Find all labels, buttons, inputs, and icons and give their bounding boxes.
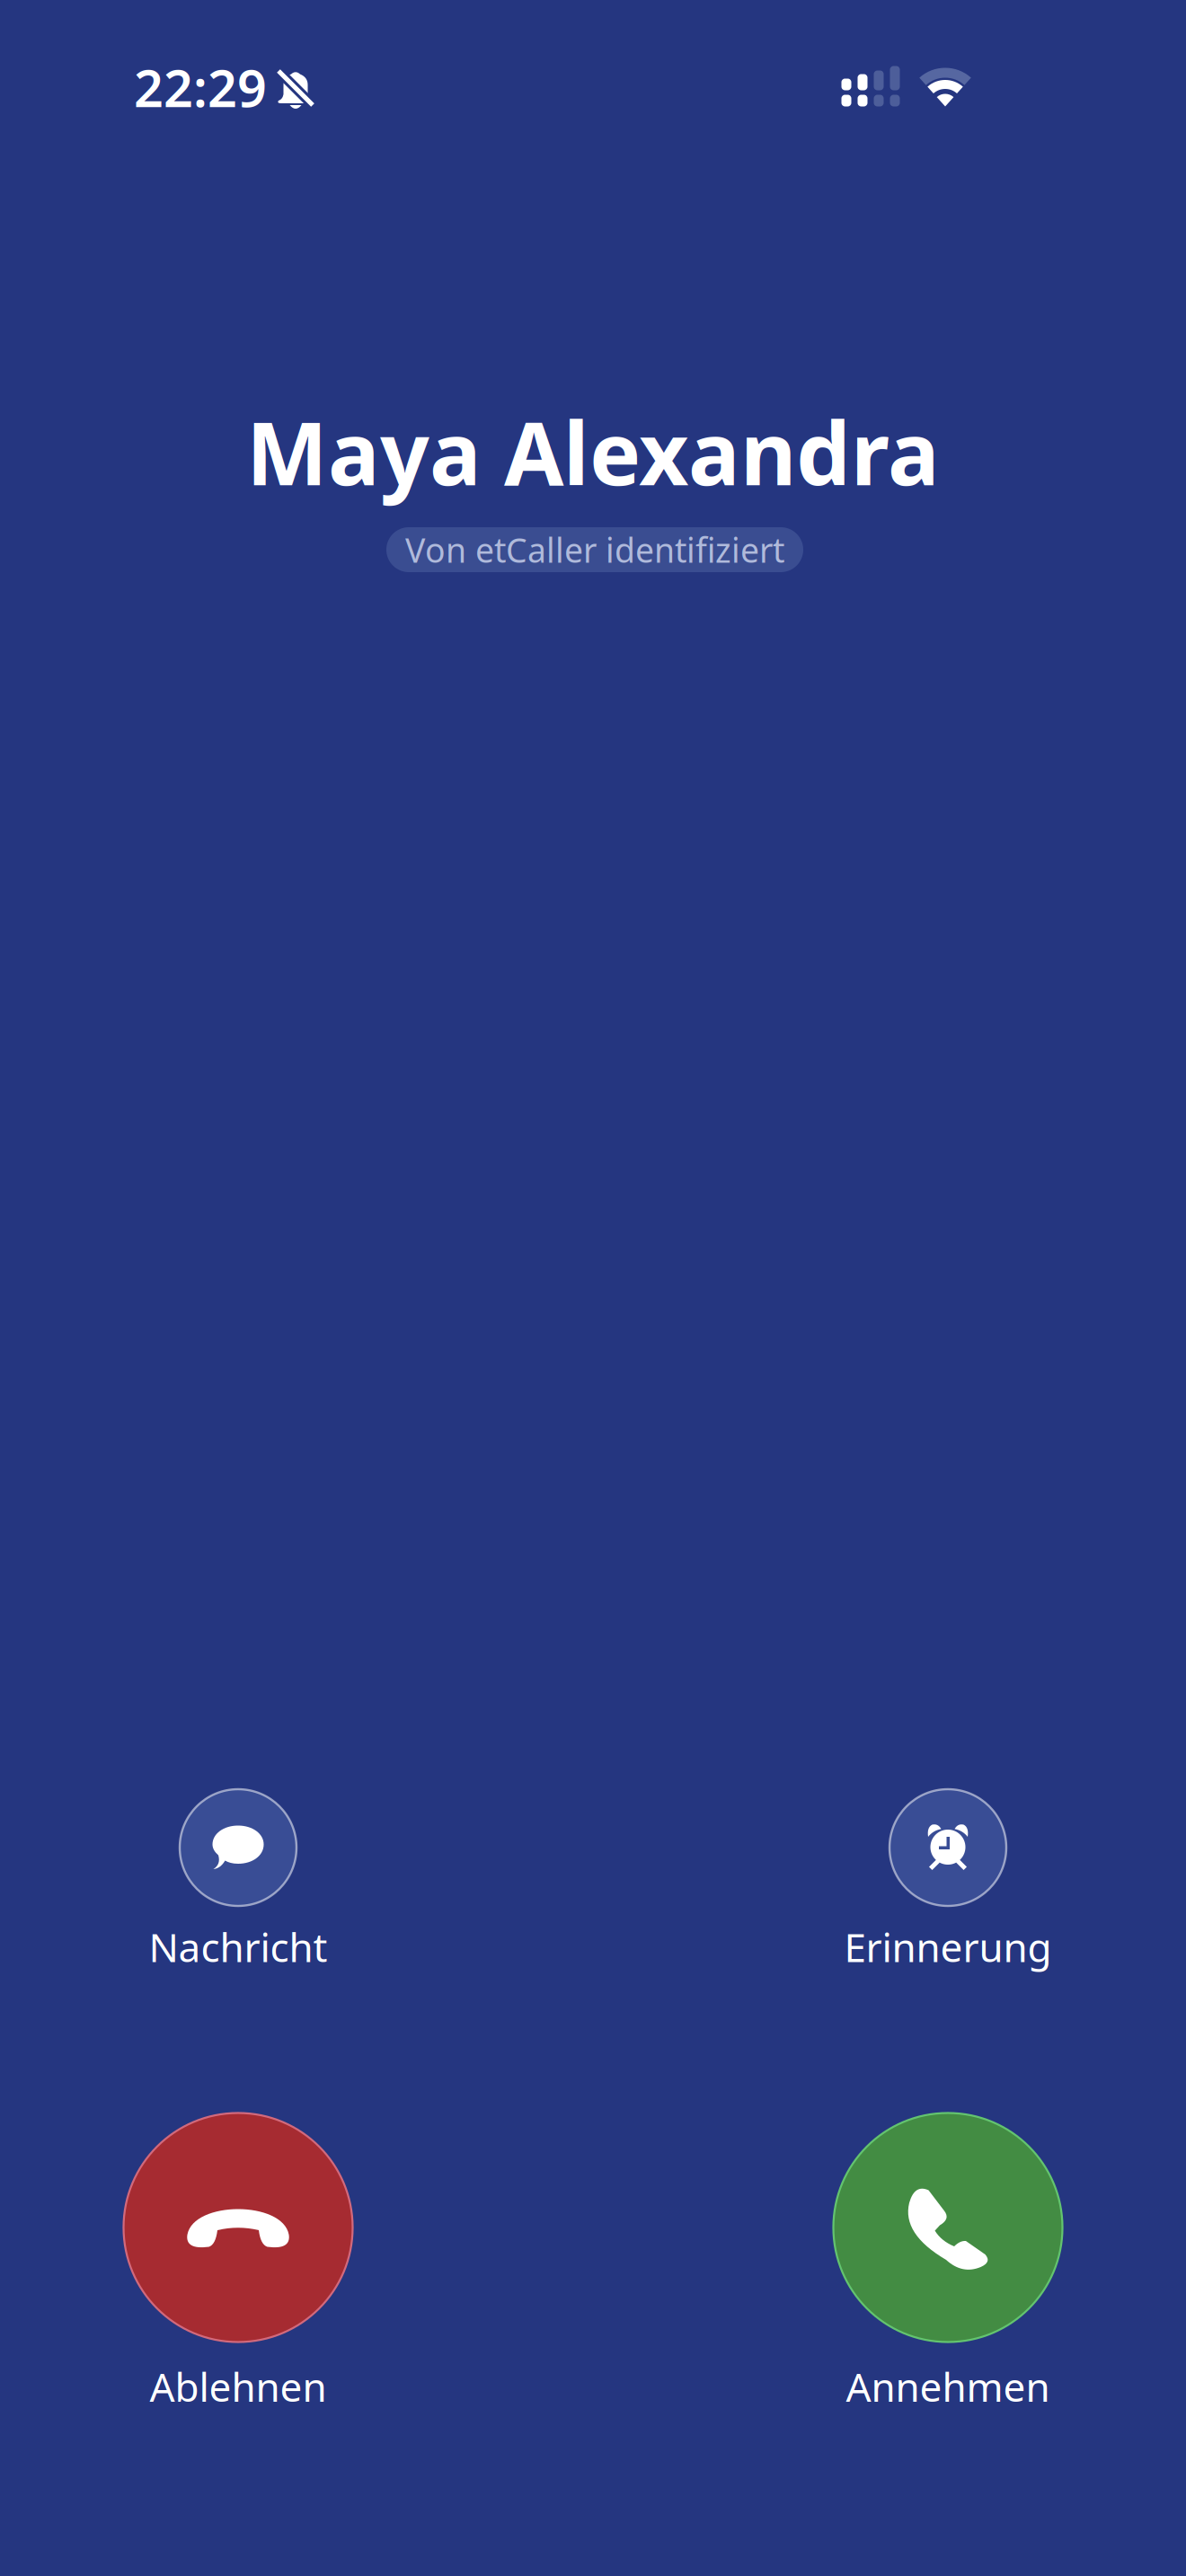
staticText: Erinnerung	[844, 1921, 1052, 1973]
staticText: Maya Alexandra	[246, 395, 940, 509]
staticText: Nachricht	[149, 1921, 327, 1973]
button[interactable]: Annehmen	[833, 2113, 1062, 2407]
button[interactable]: Nachricht	[149, 1789, 327, 1967]
staticText: Von etCaller identifiziert	[405, 527, 784, 572]
button[interactable]: Erinnerung	[844, 1789, 1052, 1967]
staticText: 22:29	[134, 53, 267, 121]
staticText: Ablehnen	[150, 2360, 327, 2413]
button[interactable]: Ablehnen	[124, 2113, 353, 2407]
staticText: Annehmen	[846, 2360, 1050, 2413]
